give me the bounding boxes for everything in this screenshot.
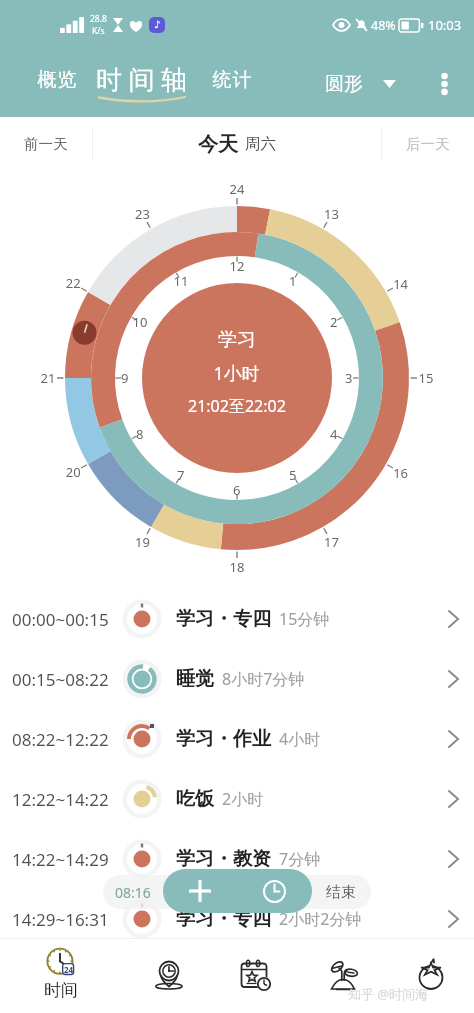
button[interactable]: 24 xyxy=(16,944,108,1006)
staticText: 4小时 xyxy=(279,728,321,750)
button[interactable]: 14:22~14:29 xyxy=(0,829,474,889)
button[interactable]: Habits xyxy=(305,944,381,1006)
staticText: 8小时7分钟 xyxy=(222,668,305,690)
staticText: 14:29~16:31 xyxy=(12,908,109,931)
staticText: K/s xyxy=(92,25,105,37)
button[interactable]: 后一天 xyxy=(382,117,474,171)
staticText: 00:00~00:15 xyxy=(12,608,109,631)
button[interactable]: 圆形 xyxy=(319,66,402,102)
staticText: 10:03 xyxy=(428,16,462,34)
button[interactable]: Location history xyxy=(131,944,207,1006)
button[interactable]: Add record xyxy=(163,869,237,913)
button[interactable]: Start timer xyxy=(237,869,312,913)
button[interactable]: Plan xyxy=(215,944,291,1006)
staticText: 统计 xyxy=(212,68,252,92)
button[interactable]: 时间轴 xyxy=(92,64,198,104)
staticText: 前一天 xyxy=(24,135,68,153)
staticText: 时间轴 xyxy=(96,64,194,97)
staticText: 知乎 @时间海 xyxy=(348,985,429,1003)
button[interactable]: 00:00~00:15 xyxy=(0,589,474,649)
staticText: 28.8 xyxy=(90,13,107,25)
button[interactable]: 08:16 xyxy=(103,875,163,909)
button[interactable]: 今天 xyxy=(93,117,381,171)
staticText: 2小时 xyxy=(222,788,264,810)
staticText: 15分钟 xyxy=(279,608,330,630)
staticText: 吃饭 xyxy=(176,787,214,811)
staticText: 00:15~08:22 xyxy=(12,668,109,691)
staticText: 7分钟 xyxy=(279,848,321,870)
button[interactable]: 结束 xyxy=(311,875,371,909)
staticText: 概览 xyxy=(37,68,77,92)
button[interactable]: 00:15~08:22 xyxy=(0,649,474,709)
button[interactable]: 统计 xyxy=(208,68,256,99)
staticText: 48% xyxy=(371,17,396,34)
staticText: 今天 xyxy=(198,132,238,157)
button[interactable]: 前一天 xyxy=(0,117,92,171)
button[interactable]: 12:22~14:22 xyxy=(0,769,474,829)
staticText: 2小时2分钟 xyxy=(279,908,362,930)
staticText: 睡觉 xyxy=(176,667,214,691)
button[interactable]: Pomodoro xyxy=(393,944,469,1006)
staticText: 时间 xyxy=(44,980,78,1001)
staticText: 08:22~12:22 xyxy=(12,728,109,751)
staticText: ♪ xyxy=(154,19,161,31)
button[interactable]: 概览 xyxy=(33,68,81,99)
staticText: 结束 xyxy=(326,883,356,902)
button[interactable]: More options xyxy=(426,66,462,102)
staticText: 后一天 xyxy=(406,135,450,153)
staticText: 学习・专四 xyxy=(176,907,271,931)
button[interactable]: 14:29~16:31 xyxy=(0,889,474,949)
staticText: 学习・教资 xyxy=(176,847,271,871)
staticText: 12:22~14:22 xyxy=(12,788,109,811)
staticText: 14:22~14:29 xyxy=(12,848,109,871)
staticText: 圆形 xyxy=(325,72,363,96)
button[interactable]: 08:22~12:22 xyxy=(0,709,474,769)
staticText: 08:16 xyxy=(115,883,151,902)
staticText: 24 xyxy=(64,964,74,975)
staticText: 学习・作业 xyxy=(176,727,271,751)
staticText: 学习・专四 xyxy=(176,607,271,631)
staticText: 周六 xyxy=(245,134,276,154)
